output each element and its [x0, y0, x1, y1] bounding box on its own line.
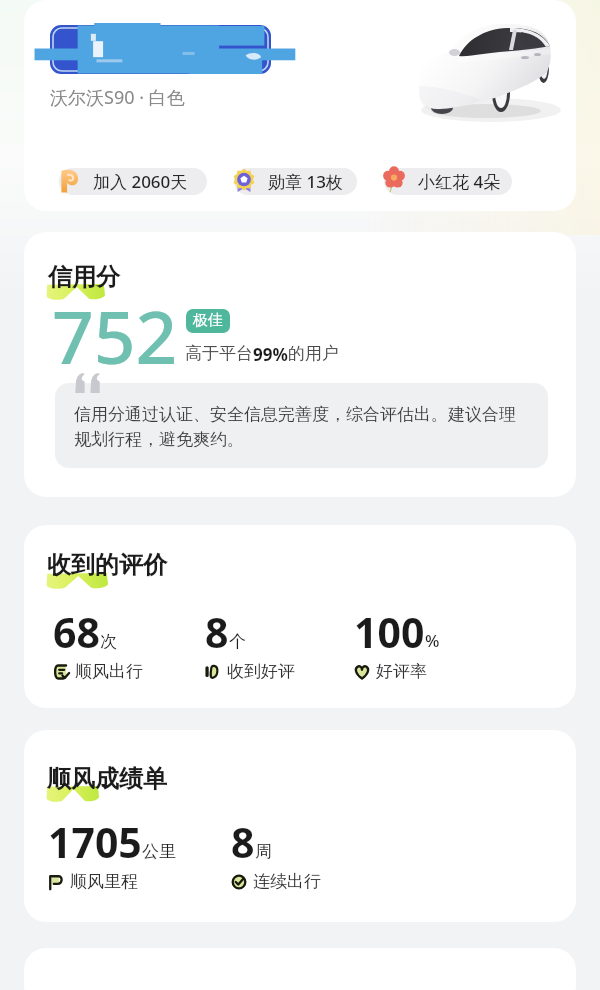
staticText: 沃尔沃S90 · 白色 [50, 85, 185, 110]
staticText: 顺风成绩单 [47, 764, 167, 794]
staticText: 加入 2060天 [93, 170, 188, 193]
button[interactable]: 加入 2060天 [50, 162, 207, 200]
button[interactable]: 车牌 [24, 0, 576, 211]
staticText: 周 [255, 841, 272, 862]
button[interactable]: 小红花 4朵 [375, 162, 512, 200]
staticText: 68 [53, 604, 100, 660]
staticText: 个 [229, 631, 246, 652]
staticText: 勋章 13枚 [268, 170, 343, 193]
staticText: 100 [354, 604, 425, 660]
staticText: 好评率 [376, 661, 427, 682]
staticText: 次 [100, 631, 117, 652]
button[interactable]: 勋章 13枚 [225, 162, 357, 200]
staticText: 752 [52, 286, 178, 385]
staticText: 规划行程，避免爽约。 [74, 429, 244, 450]
staticText: 顺风出行 [75, 661, 143, 682]
staticText: 公里 [142, 841, 176, 862]
staticText: % [425, 629, 440, 652]
staticText: 的用户 [288, 343, 339, 364]
staticText: 小红花 4朵 [418, 170, 501, 193]
staticText: 8 [205, 604, 229, 660]
staticText: 顺风里程 [70, 871, 138, 892]
staticText: 99% [253, 343, 288, 366]
staticText: 连续出行 [253, 871, 321, 892]
staticText: 收到的评价 [47, 550, 167, 580]
other: 车牌 [50, 25, 271, 74]
staticText: 收到好评 [227, 661, 295, 682]
staticText: 8 [231, 814, 255, 870]
staticText: 信用分 [48, 262, 120, 292]
staticText: 极佳 [193, 311, 223, 330]
staticText: 1705 [48, 814, 142, 870]
staticText: 高于平台 [185, 343, 253, 364]
staticText: 信用分通过认证、安全信息完善度，综合评估出。建议合理 [74, 404, 516, 425]
